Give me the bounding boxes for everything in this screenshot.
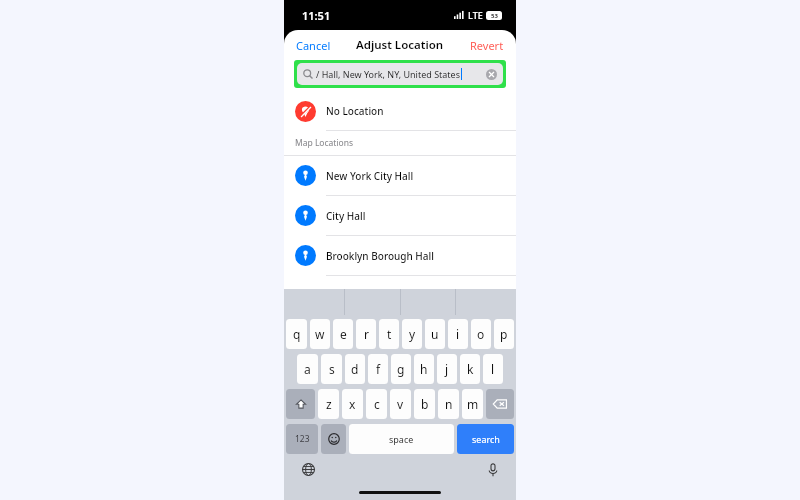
- staticText: No Location: [326, 104, 384, 118]
- staticText: x: [349, 396, 356, 412]
- button[interactable]: i: [448, 319, 468, 349]
- staticText: City Hall: [326, 209, 366, 223]
- staticText: d: [351, 361, 359, 377]
- staticText: y: [409, 326, 416, 342]
- staticText: Cancel: [296, 38, 331, 53]
- button[interactable]: v: [390, 389, 411, 419]
- staticText: Map Locations: [295, 137, 354, 149]
- staticText: search: [472, 433, 500, 445]
- staticText: / Hall, New York, NY, United States: [316, 68, 461, 80]
- staticText: h: [420, 361, 428, 377]
- staticText: Adjust Location: [356, 37, 444, 53]
- button[interactable]: b: [414, 389, 435, 419]
- staticText: New York City Hall: [326, 169, 414, 183]
- staticText: space: [389, 433, 414, 445]
- button[interactable]: n: [438, 389, 459, 419]
- staticText: t: [387, 326, 392, 342]
- button[interactable]: y: [402, 319, 422, 349]
- staticText: n: [445, 396, 453, 412]
- staticText: Revert: [470, 38, 504, 53]
- button[interactable]: Emoji: [321, 424, 346, 454]
- staticText: LTE: [468, 9, 483, 21]
- button[interactable]: h: [414, 354, 434, 384]
- button[interactable]: m: [462, 389, 483, 419]
- button[interactable]: City Hall: [284, 196, 516, 235]
- button[interactable]: Dictation: [488, 463, 498, 477]
- button[interactable]: f: [368, 354, 388, 384]
- staticText: w: [315, 326, 325, 342]
- button[interactable]: q: [286, 319, 307, 349]
- staticText: o: [477, 326, 485, 342]
- staticText: e: [340, 326, 347, 342]
- button[interactable]: p: [494, 319, 514, 349]
- staticText: s: [329, 361, 335, 377]
- button[interactable]: e: [333, 319, 353, 349]
- button[interactable]: g: [391, 354, 411, 384]
- staticText: 123: [295, 433, 310, 445]
- staticText: r: [364, 326, 369, 342]
- staticText: i: [456, 326, 460, 342]
- button[interactable]: l: [483, 354, 503, 384]
- button[interactable]: Clear text: [486, 69, 497, 80]
- button[interactable]: s: [321, 354, 342, 384]
- button[interactable]: Shift: [286, 389, 315, 419]
- staticText: q: [293, 326, 301, 342]
- button[interactable]: Brooklyn Borough Hall: [284, 236, 516, 275]
- button[interactable]: u: [425, 319, 445, 349]
- staticText: j: [445, 361, 449, 377]
- button[interactable]: d: [345, 354, 365, 384]
- button[interactable]: Change keyboard: [302, 463, 315, 476]
- button[interactable]: o: [471, 319, 491, 349]
- staticText: k: [467, 361, 474, 377]
- button[interactable]: No Location: [284, 92, 516, 130]
- button[interactable]: Backspace: [486, 389, 514, 419]
- staticText: p: [500, 326, 508, 342]
- button[interactable]: w: [310, 319, 330, 349]
- button[interactable]: space: [349, 424, 454, 454]
- button[interactable]: x: [342, 389, 363, 419]
- button[interactable]: z: [318, 389, 339, 419]
- button[interactable]: Revert: [458, 33, 516, 58]
- staticText: u: [431, 326, 439, 342]
- staticText: g: [397, 361, 405, 377]
- button[interactable]: k: [460, 354, 480, 384]
- button[interactable]: / Hall, New York, NY, United States: [297, 63, 503, 85]
- button[interactable]: a: [297, 354, 318, 384]
- staticText: z: [326, 396, 332, 412]
- staticText: 53: [491, 12, 498, 20]
- button[interactable]: search: [457, 424, 514, 454]
- button[interactable]: 123: [286, 424, 318, 454]
- staticText: v: [397, 396, 404, 412]
- button[interactable]: t: [379, 319, 399, 349]
- staticText: Brooklyn Borough Hall: [326, 249, 434, 263]
- staticText: 11:51: [302, 8, 331, 23]
- button[interactable]: r: [356, 319, 376, 349]
- staticText: c: [374, 396, 380, 412]
- staticText: b: [421, 396, 429, 412]
- staticText: l: [491, 361, 495, 377]
- button[interactable]: New York City Hall: [284, 156, 516, 195]
- button[interactable]: j: [437, 354, 457, 384]
- button[interactable]: c: [366, 389, 387, 419]
- staticText: m: [467, 396, 479, 412]
- staticText: a: [304, 361, 311, 377]
- button[interactable]: Cancel: [284, 33, 343, 58]
- staticText: f: [376, 361, 381, 377]
